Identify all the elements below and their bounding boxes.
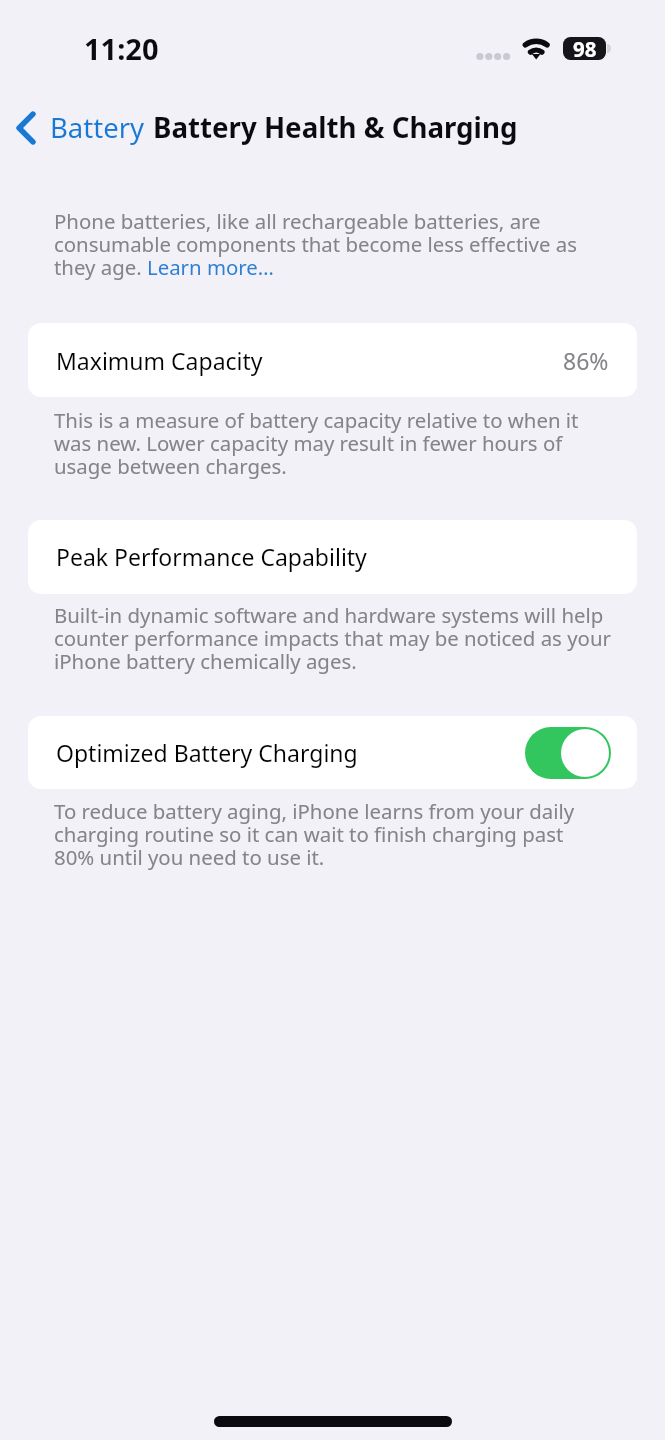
staticText: 86% xyxy=(563,345,609,376)
staticText: Built-in dynamic software and hardware s… xyxy=(54,601,611,675)
staticText: This is a measure of battery capacity re… xyxy=(54,406,579,480)
staticText: Optimized Battery Charging xyxy=(56,737,358,768)
staticText: Battery Health & Charging xyxy=(153,108,518,146)
staticText: Peak Performance Capability xyxy=(56,541,367,572)
staticText: To reduce battery aging, iPhone learns f… xyxy=(54,797,575,871)
other: Wi-Fi xyxy=(521,37,551,61)
staticText: 98 xyxy=(573,35,597,63)
button[interactable]: Optimized Battery Charging toggle xyxy=(525,727,611,779)
button[interactable]: Maximum Capacity xyxy=(28,323,637,397)
other: Battery 98 percent xyxy=(563,37,606,65)
staticText: Phone batteries, like all rechargeable b… xyxy=(54,207,577,281)
staticText: Battery xyxy=(50,109,145,146)
staticText: Maximum Capacity xyxy=(56,345,263,376)
other: Cellular signal xyxy=(474,50,510,63)
staticText: 11:20 xyxy=(84,29,159,68)
button[interactable]: Back to Battery xyxy=(12,106,149,149)
button[interactable]: Optimized Battery Charging xyxy=(28,716,637,789)
button[interactable]: Peak Performance Capability xyxy=(28,520,637,594)
